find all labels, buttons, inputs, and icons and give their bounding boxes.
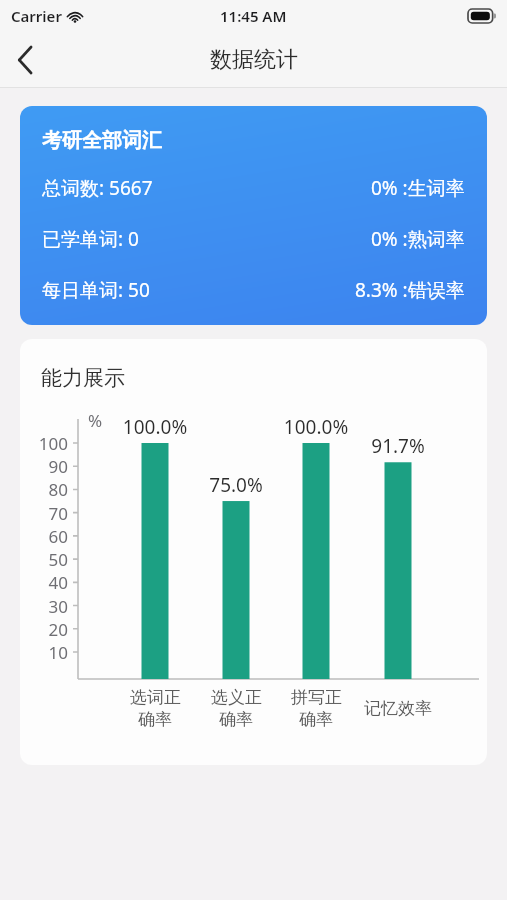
staticText: 0% :熟词率	[371, 226, 465, 252]
staticText: 每日单词: 50	[42, 277, 150, 303]
button[interactable]: Back	[0, 34, 52, 86]
staticText: 总词数: 5667	[42, 175, 153, 201]
staticText: 能力展示	[41, 365, 125, 391]
staticText: 选词正	[130, 687, 181, 708]
staticText: 90	[26, 455, 68, 478]
staticText: %	[88, 409, 103, 432]
staticText: 10	[26, 641, 68, 664]
staticText: 0% :生词率	[371, 175, 465, 201]
staticText: 8.3% :错误率	[355, 277, 465, 303]
staticText: 考研全部词汇	[42, 128, 162, 153]
staticText: 确率	[138, 709, 172, 730]
staticText: 100.0%	[271, 414, 361, 440]
staticText: 20	[26, 618, 68, 641]
staticText: 30	[26, 595, 68, 618]
staticText: 11:45 AM	[220, 6, 287, 26]
staticText: 50	[26, 548, 68, 571]
staticText: 拼写正	[291, 687, 342, 708]
staticText: 91.7%	[353, 433, 443, 459]
staticText: 已学单词: 0	[42, 226, 139, 252]
staticText: 确率	[299, 709, 333, 730]
staticText: 75.0%	[191, 472, 281, 498]
staticText: 记忆效率	[364, 698, 432, 719]
staticText: 100	[26, 432, 68, 455]
staticText: 40	[26, 571, 68, 594]
staticText: 100.0%	[110, 414, 200, 440]
staticText: 60	[26, 525, 68, 548]
staticText: 70	[26, 502, 68, 525]
button[interactable]: 考研全部词汇	[20, 106, 487, 325]
staticText: Carrier	[11, 6, 62, 26]
staticText: 80	[26, 478, 68, 501]
staticText: 数据统计	[210, 46, 298, 74]
staticText: 确率	[219, 709, 253, 730]
staticText: 选义正	[211, 687, 262, 708]
